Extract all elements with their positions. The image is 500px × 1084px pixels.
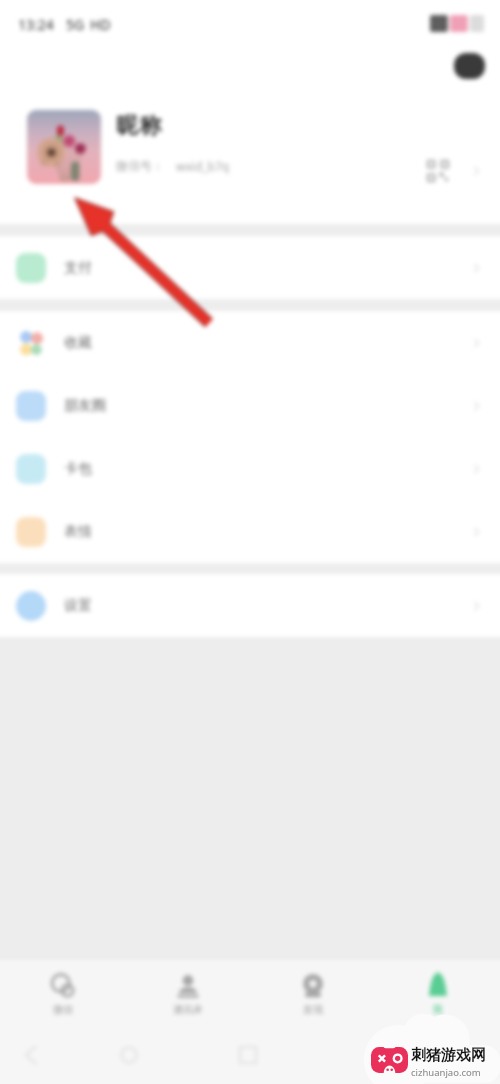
button[interactable]: 支付 [0, 236, 500, 299]
staticText: 刺猪游戏网 [411, 1046, 486, 1065]
staticText: 设置 [64, 597, 92, 615]
staticText: 5G [66, 15, 85, 34]
staticText: 卡包 [64, 460, 92, 478]
staticText: 微信号： [116, 158, 164, 173]
staticText: 微信 [53, 1003, 73, 1016]
staticText: wxid_b7q [176, 158, 230, 174]
staticText: 昵称 [116, 112, 164, 140]
staticText: 收藏 [64, 334, 92, 352]
staticText: 13:24 [18, 15, 54, 34]
staticText: 支付 [64, 259, 92, 277]
button[interactable]: 朋友圈 [0, 374, 500, 437]
button[interactable]: 发现 [250, 960, 375, 1025]
button[interactable]: 收藏 [0, 311, 500, 374]
staticText: 通讯录 [173, 1003, 203, 1016]
staticText: 表情 [64, 523, 92, 541]
staticText: 朋友圈 [64, 397, 106, 415]
button[interactable]: My QR code [428, 161, 448, 181]
button[interactable]: 设置 [0, 574, 500, 637]
button[interactable]: 微信 [0, 960, 125, 1025]
staticText: 发现 [303, 1003, 323, 1016]
staticText: 我 [433, 1003, 443, 1016]
button[interactable]: 通讯录 [125, 960, 250, 1025]
button[interactable]: 表情 [0, 500, 500, 563]
button[interactable]: Floating action [454, 53, 485, 79]
button[interactable]: 我 [375, 960, 500, 1025]
button[interactable]: 卡包 [0, 437, 500, 500]
button[interactable]: 昵称 [0, 95, 500, 224]
staticText: HD [90, 15, 111, 34]
staticText: cizhuanjao.com [411, 1066, 481, 1079]
